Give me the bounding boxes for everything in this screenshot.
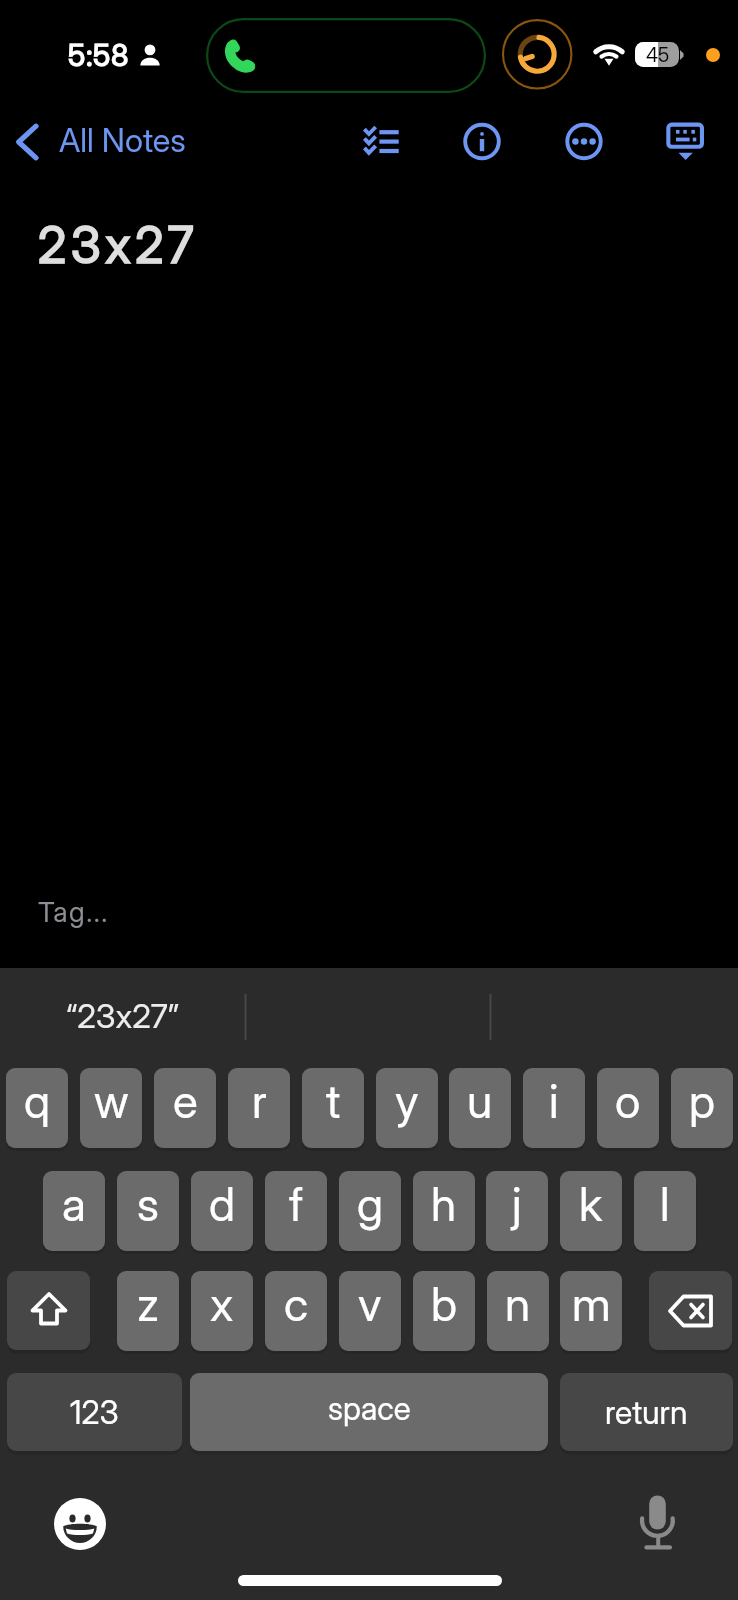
staticText: z [137,1276,160,1332]
staticText: p [689,1073,716,1129]
button[interactable]: Emoji keyboard [54,1498,106,1550]
button[interactable]: More options [554,111,614,171]
staticText: q [24,1073,51,1129]
button[interactable]: t [302,1068,364,1148]
button[interactable]: r [228,1068,290,1148]
button[interactable]: l [634,1171,696,1251]
staticText: d [209,1176,236,1232]
staticText: g [357,1176,384,1232]
staticText: l [660,1176,670,1232]
staticText: o [615,1073,641,1129]
button[interactable]: y [376,1068,438,1148]
staticText: r [252,1073,267,1129]
staticText: s [137,1176,159,1232]
button[interactable]: Info [452,111,512,171]
staticText: f [289,1176,304,1232]
button[interactable]: j [486,1171,548,1251]
button[interactable]: g [339,1171,401,1251]
staticText: Tag... [38,895,109,928]
staticText: w [94,1073,129,1129]
staticText: t [326,1073,341,1129]
staticText: m [572,1276,611,1332]
staticText: e [173,1073,198,1129]
button[interactable]: b [413,1271,475,1351]
button[interactable]: k [560,1171,622,1251]
button[interactable]: m [560,1271,622,1351]
button[interactable]: e [154,1068,216,1148]
staticText: y [395,1073,419,1129]
button[interactable]: Dictate [634,1496,682,1556]
button[interactable]: All Notes [6,112,186,172]
staticText: k [579,1176,603,1232]
button[interactable]: space [190,1373,548,1451]
button[interactable]: p [671,1068,733,1148]
button[interactable]: a [43,1171,105,1251]
staticText: 23x27 [38,215,199,275]
button[interactable]: Hide keyboard [656,108,714,168]
staticText: 123 [70,1393,119,1432]
button[interactable]: Backspace [649,1271,732,1350]
button[interactable]: Checklist [344,111,418,171]
staticText: b [431,1276,458,1332]
button[interactable]: z [117,1271,179,1351]
button[interactable]: i [523,1068,585,1148]
button[interactable]: d [191,1171,253,1251]
staticText: n [505,1276,531,1332]
staticText: c [284,1276,309,1332]
button[interactable]: 123 [7,1373,182,1451]
button[interactable]: f [265,1171,327,1251]
button[interactable]: w [80,1068,142,1148]
button[interactable]: Shift [7,1271,90,1350]
button[interactable]: c [265,1271,327,1351]
button[interactable]: h [413,1171,475,1251]
staticText: h [431,1176,457,1232]
staticText: u [467,1073,493,1129]
button[interactable]: u [449,1068,511,1148]
staticText: i [549,1073,559,1129]
button[interactable]: v [339,1271,401,1351]
staticText: All Notes [59,120,186,159]
button[interactable]: n [487,1271,549,1351]
staticText: 45 [646,43,670,67]
button[interactable]: o [597,1068,659,1148]
staticText: v [358,1276,382,1332]
staticText: x [210,1276,234,1332]
button[interactable]: x [191,1271,253,1351]
staticText: a [62,1176,86,1232]
button[interactable]: “23x27” [40,974,210,1054]
staticText: space [328,1389,411,1427]
button[interactable]: s [117,1171,179,1251]
staticText: j [512,1176,522,1232]
staticText: 5:58 [68,37,130,73]
button[interactable]: q [6,1068,68,1148]
staticText: return [605,1393,688,1432]
button[interactable]: return [560,1373,733,1451]
staticText: “23x27” [66,996,179,1036]
button[interactable]: Tag... [20,880,160,940]
